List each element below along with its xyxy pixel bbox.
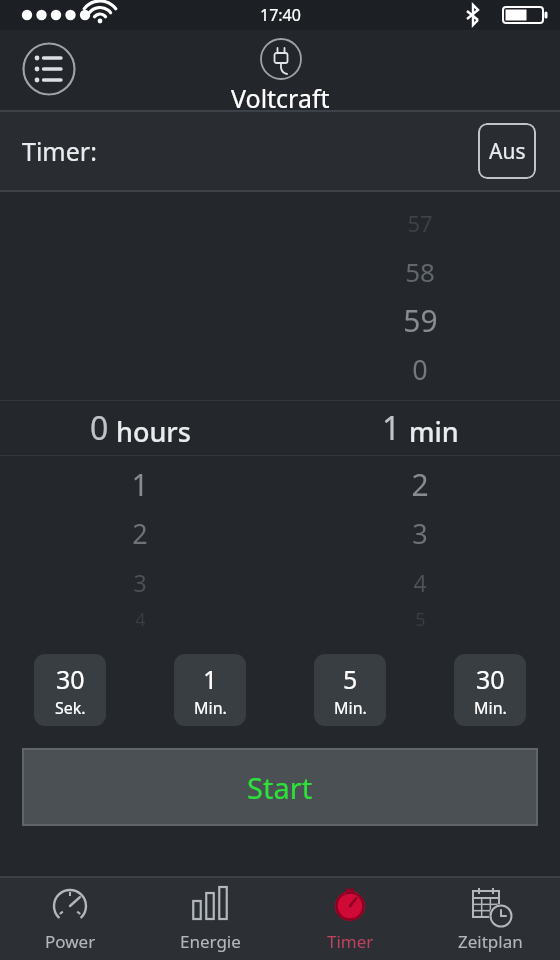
staticText: 3 xyxy=(133,567,147,598)
button[interactable]: Start xyxy=(22,748,538,826)
staticText: 1 xyxy=(382,406,401,450)
button[interactable]: Zeitplan xyxy=(420,878,560,960)
staticText: 2 xyxy=(411,464,429,505)
staticText: Min. xyxy=(334,697,367,719)
staticText: 3 xyxy=(412,515,428,552)
button[interactable]: Menu xyxy=(22,42,76,96)
staticText: min xyxy=(409,413,459,450)
staticText: 5 xyxy=(415,607,426,632)
staticText: 57 xyxy=(407,208,433,238)
staticText: 0 xyxy=(412,351,428,388)
staticText: 4 xyxy=(135,607,146,632)
staticText: Voltcraft xyxy=(231,81,330,110)
staticText: Timer: xyxy=(22,134,97,168)
button[interactable]: 5 xyxy=(314,654,386,726)
staticText: 59 xyxy=(403,300,438,341)
button[interactable]: Timer: xyxy=(0,112,560,190)
button[interactable]: 1 xyxy=(174,654,246,726)
button[interactable]: Power xyxy=(0,878,140,960)
staticText: 17:40 xyxy=(260,4,301,26)
staticText: Min. xyxy=(194,697,227,719)
staticText: Power xyxy=(45,930,96,953)
staticText: Energie xyxy=(180,930,241,953)
staticText: Min. xyxy=(474,697,507,719)
staticText: 1 xyxy=(203,662,218,696)
staticText: 0 xyxy=(90,406,109,450)
button[interactable]: Aus xyxy=(478,123,536,179)
staticText: 30 xyxy=(56,662,85,696)
staticText: Aus xyxy=(489,137,526,166)
staticText: 30 xyxy=(476,662,505,696)
staticText: 1 xyxy=(131,464,149,505)
staticText: hours xyxy=(116,413,191,450)
staticText: 2 xyxy=(132,515,148,552)
staticText: Start xyxy=(247,768,313,807)
staticText: 58 xyxy=(405,254,435,289)
staticText: 5 xyxy=(343,662,358,696)
staticText: Sek. xyxy=(55,697,86,719)
button[interactable]: 30 xyxy=(34,654,106,726)
staticText: Timer xyxy=(327,930,374,953)
button[interactable]: Energie xyxy=(140,878,280,960)
button[interactable]: 30 xyxy=(454,654,526,726)
button[interactable]: Timer xyxy=(280,878,420,960)
staticText: 4 xyxy=(413,567,427,598)
staticText: Zeitplan xyxy=(458,930,523,953)
